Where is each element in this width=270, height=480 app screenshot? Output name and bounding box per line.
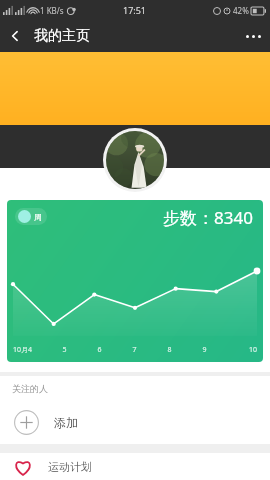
button[interactable]: 添加 [0,400,270,444]
button[interactable]: 运动计划 [0,453,270,480]
button[interactable]: More options [236,20,270,52]
staticText: 10月4 [13,345,47,355]
staticText: 步数：8340 [163,206,253,229]
button[interactable]: 周 [7,200,263,362]
staticText: 添加 [54,415,78,430]
staticText: 关注的人 [12,383,48,394]
staticText: 5 [47,345,82,355]
staticText: 9 [187,345,222,355]
staticText: 8 [152,345,187,355]
staticText: 17:51 [123,4,147,16]
staticText: 1 KB/s [40,5,64,16]
staticText: 10 [222,345,257,355]
staticText: 运动计划 [48,460,92,474]
staticText: 6 [82,345,117,355]
staticText: 42% [233,5,249,16]
staticText: 我的主页 [34,27,90,45]
button[interactable]: 周 [15,208,47,225]
button[interactable]: Profile photo [103,128,167,192]
button[interactable]: Back [0,21,30,51]
button[interactable]: Banner [0,52,270,125]
staticText: 7 [117,345,152,355]
staticText: 周 [34,212,42,222]
